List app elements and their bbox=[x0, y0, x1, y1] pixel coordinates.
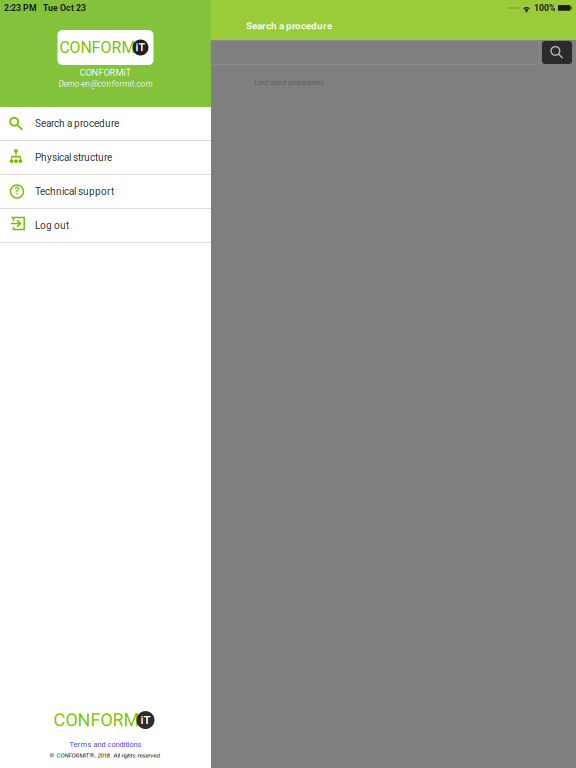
staticText: Last used procedures bbox=[254, 78, 324, 87]
staticText: ? bbox=[14, 185, 19, 197]
staticText: Technical support bbox=[35, 186, 114, 197]
staticText: Demo-en@conformit.com bbox=[58, 79, 152, 89]
staticText: CONFORM bbox=[53, 710, 139, 730]
staticText: 2:23 PM bbox=[4, 3, 37, 13]
staticText: Tue Oct 23 bbox=[43, 3, 86, 13]
button[interactable]: Search bbox=[542, 41, 572, 64]
button[interactable]: Physical structure bbox=[0, 141, 211, 174]
staticText: CONFORMiT bbox=[79, 67, 131, 78]
button[interactable]: Log out bbox=[0, 209, 211, 242]
button[interactable]: Search a procedure bbox=[0, 107, 211, 140]
staticText: iT bbox=[140, 713, 150, 727]
button[interactable]: Terms and conditions bbox=[69, 740, 141, 749]
button[interactable]: ? bbox=[0, 175, 211, 208]
staticText: Terms and conditions bbox=[69, 740, 141, 749]
staticText: Search a procedure bbox=[35, 118, 119, 129]
staticText: CONFORM bbox=[59, 38, 135, 57]
staticText: Physical structure bbox=[35, 152, 112, 163]
staticText: 100% bbox=[534, 3, 555, 13]
staticText: © CONFORMiT®, 2018. All rights reserved. bbox=[49, 752, 161, 759]
staticText: iT bbox=[135, 41, 145, 54]
staticText: Log out bbox=[35, 220, 69, 231]
staticText: Search a procedure bbox=[246, 20, 332, 32]
